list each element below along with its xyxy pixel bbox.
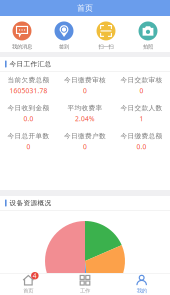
button[interactable]: 4 <box>0 274 57 295</box>
button[interactable]: 我的 <box>113 274 170 295</box>
staticText: 0.0 <box>137 142 147 151</box>
staticText: 0 <box>140 86 144 95</box>
staticText: 我的消息 <box>12 43 32 50</box>
button[interactable]: 工作 <box>57 274 113 295</box>
staticText: 拍照 <box>143 43 153 50</box>
staticText: 设备资源概况 <box>10 199 52 207</box>
staticText: 2.04% <box>75 114 95 123</box>
staticText: 0 <box>83 86 87 95</box>
staticText: 4 <box>33 271 37 280</box>
staticText: 0 <box>26 142 30 151</box>
button[interactable]: 我的消息 <box>1 16 43 52</box>
staticText: 我的 <box>137 287 147 294</box>
staticText: 今日工作汇总 <box>10 60 52 68</box>
staticText: 今日交款人数 <box>121 104 163 112</box>
staticText: 0 <box>83 142 87 151</box>
staticText: 今日收到金额 <box>7 104 49 112</box>
staticText: 平均收费率 <box>67 104 102 112</box>
staticText: 首页 <box>23 287 33 294</box>
staticText: 首页 <box>77 3 93 13</box>
staticText: 今日缴费审核 <box>64 76 106 84</box>
staticText: 今日缴费户数 <box>64 132 106 140</box>
staticText: 0.0 <box>23 114 33 123</box>
staticText: 签到 <box>59 43 69 50</box>
button[interactable]: 拍照 <box>127 16 169 52</box>
staticText: 工作 <box>80 287 90 294</box>
staticText: 今日缴费总额 <box>121 132 163 140</box>
staticText: 当前欠费总额 <box>7 76 49 84</box>
staticText: 今日总开单数 <box>7 132 49 140</box>
staticText: 1605031.78 <box>9 86 47 95</box>
staticText: 扫一扫 <box>98 43 113 50</box>
staticText: 1 <box>140 114 144 123</box>
button[interactable]: 签到 <box>43 16 85 52</box>
staticText: 今日交款审核 <box>121 76 163 84</box>
button[interactable]: 扫一扫 <box>85 16 127 52</box>
